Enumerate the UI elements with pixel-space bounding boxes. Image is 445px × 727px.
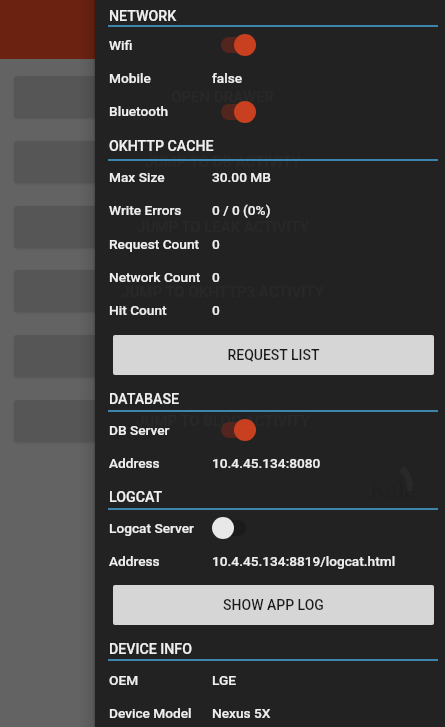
- staticText: Address: [109, 455, 160, 471]
- staticText: LOGCAT: [109, 489, 163, 506]
- staticText: Hit Count: [109, 302, 167, 318]
- button[interactable]: Bluetooth: [207, 95, 261, 129]
- staticText: 30.00 MB: [212, 169, 271, 185]
- staticText: 0: [212, 236, 220, 252]
- staticText: OEM: [109, 672, 139, 688]
- staticText: Network Count: [109, 269, 201, 285]
- staticText: Device Model: [109, 705, 192, 721]
- staticText: Max Size: [109, 169, 165, 185]
- staticText: false: [212, 70, 243, 86]
- staticText: Write Errors: [109, 202, 182, 218]
- staticText: NETWORK: [109, 8, 177, 25]
- staticText: REQUEST LIST: [227, 347, 320, 363]
- button[interactable]: SHOW APP LOG: [113, 585, 434, 625]
- staticText: OKHTTP CACHE: [109, 138, 214, 155]
- staticText: DATABASE: [109, 391, 180, 408]
- staticText: JUMP TO DB ACTIVITY: [145, 153, 301, 171]
- staticText: Mobile: [109, 70, 151, 86]
- button[interactable]: Wifi: [207, 28, 261, 62]
- staticText: OPEN DRAWER: [171, 88, 274, 106]
- staticText: DEVICE INFO: [109, 641, 192, 658]
- staticText: 10.4.45.134:8819/logcat.html: [212, 553, 396, 569]
- staticText: Address: [109, 553, 160, 569]
- staticText: Request Count: [109, 236, 200, 252]
- staticText: 0 / 0 (0%): [212, 202, 271, 218]
- staticText: LGE: [212, 672, 237, 688]
- staticText: Nexus 5X: [212, 705, 271, 721]
- button[interactable]: Logcat Server: [207, 511, 261, 545]
- staticText: 0: [212, 302, 220, 318]
- staticText: Bluetooth: [109, 103, 169, 119]
- staticText: JUMP TO BLOG ACTIVITY: [136, 412, 310, 430]
- staticText: DB Server: [109, 422, 170, 438]
- staticText: 10.4.45.134:8080: [212, 455, 321, 471]
- button[interactable]: REQUEST LIST: [113, 335, 434, 375]
- staticText: SHOW APP LOG: [223, 597, 324, 613]
- button[interactable]: DB Server: [207, 413, 261, 447]
- staticText: Wifi: [109, 37, 133, 53]
- staticText: Logcat Server: [109, 520, 194, 536]
- staticText: 0: [212, 269, 220, 285]
